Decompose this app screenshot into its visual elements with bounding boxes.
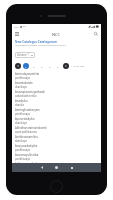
staticText: Ayurvedadipika [15, 117, 35, 121]
staticText: Volume 1 [17, 53, 29, 57]
staticText: Acaryavadadipika [15, 144, 38, 148]
staticText: 3 [41, 65, 43, 68]
staticText: aakarikadivivrtika [15, 94, 37, 98]
button[interactable]: Volume 1 [15, 52, 35, 58]
staticText: 9:41 [14, 25, 19, 28]
button[interactable]: Search [91, 29, 101, 39]
button[interactable]: Anadipika [15, 99, 99, 108]
button[interactable]: Menu [12, 29, 22, 39]
staticText: akarika [15, 103, 24, 107]
button[interactable]: Amrtaghatakavyam [15, 108, 99, 117]
button[interactable]: Ayurvedadipika [15, 117, 99, 126]
button[interactable]: 2 [31, 63, 37, 69]
button[interactable]: Anandakanda [15, 81, 99, 90]
button[interactable]: Home [49, 163, 64, 172]
staticText: An alphabetical register of Sanskrit wor… [15, 44, 66, 47]
staticText: Amrtaghatakavyam [15, 108, 40, 112]
staticText: Avirbhavasamhita [15, 135, 38, 139]
button[interactable]: Next page [63, 63, 69, 69]
staticText: paribhasaya [15, 157, 30, 161]
staticText: paribhasaya [15, 76, 30, 80]
button[interactable]: Back [34, 163, 49, 172]
staticText: Amrtodayasamhita [15, 72, 40, 76]
staticText: Adikarmapradipika [15, 162, 39, 163]
button[interactable]: 3 [39, 63, 45, 69]
staticText: Anandakanda [15, 81, 33, 85]
staticText: akarikaya [15, 85, 27, 89]
button[interactable]: Avirbhavasamhita [15, 135, 99, 144]
staticText: 4 [49, 65, 51, 68]
staticText: Anadipika [15, 99, 28, 103]
staticText: Anavaptavastugathaadi [15, 90, 45, 94]
staticText: akarikaya [15, 121, 27, 125]
staticText: akarikaya [15, 139, 27, 143]
staticText: 5 [57, 65, 59, 68]
staticText: paribhasaya [15, 112, 30, 116]
button[interactable]: Acaryavadadipika [15, 144, 99, 153]
staticText: New Catalogus Catalogorum [15, 40, 57, 44]
button[interactable]: Amrtodayasamhita [15, 72, 99, 81]
staticText: 4G [23, 25, 26, 28]
button[interactable]: 5 [55, 63, 61, 69]
staticText: Abhidhanaratnamalavrtti [15, 126, 47, 130]
staticText: NCC [52, 32, 61, 37]
button[interactable]: Anavaptavastugathaadi [15, 90, 99, 99]
button[interactable]: Recent apps [64, 163, 79, 172]
staticText: 1 [25, 65, 27, 68]
staticText: Acaramayukhatika [15, 153, 39, 157]
button[interactable]: Abhidhanaratnamalavrtti [15, 126, 99, 135]
button[interactable]: 4 [47, 63, 53, 69]
button[interactable]: 1 [23, 63, 29, 69]
staticText: 2 [33, 65, 35, 68]
staticText: paribhasaya [15, 148, 30, 152]
button[interactable]: Acaramayukhatika [15, 153, 99, 162]
button[interactable]: Previous page [15, 63, 21, 69]
button[interactable]: Adikarmapradipika [15, 162, 99, 163]
staticText: aacaryadhikarana [15, 130, 37, 134]
staticText: 1 - 20 of 1000 [71, 65, 85, 68]
